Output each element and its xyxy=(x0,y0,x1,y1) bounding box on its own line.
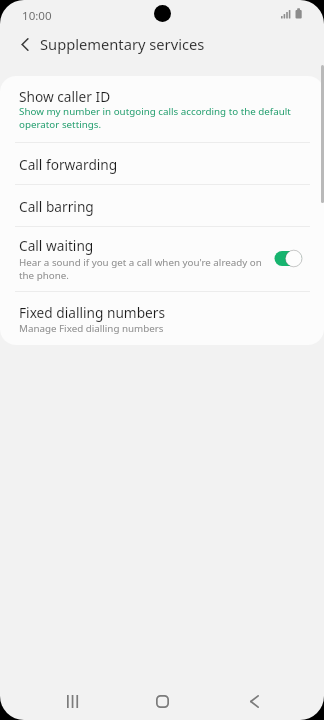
staticText: Supplementary services xyxy=(40,34,205,54)
staticText: Fixed dialling numbers xyxy=(19,303,166,322)
button[interactable]: Call waiting xyxy=(0,227,324,291)
button[interactable]: Call barring xyxy=(0,185,324,226)
button[interactable]: Call waiting toggle xyxy=(274,248,303,269)
button[interactable]: Back xyxy=(10,29,40,59)
staticText: Show my number in outgoing calls accordi… xyxy=(19,105,293,131)
staticText: Show caller ID xyxy=(19,87,111,106)
button[interactable]: Back xyxy=(234,681,275,720)
button[interactable]: Fixed dialling numbers xyxy=(0,292,324,345)
staticText: Call waiting xyxy=(19,236,94,255)
button[interactable]: Recents xyxy=(52,681,93,720)
button[interactable]: Call forwarding xyxy=(0,143,324,184)
button[interactable]: Home xyxy=(142,681,183,720)
staticText: 10:00 xyxy=(22,8,52,24)
staticText: Call barring xyxy=(19,197,94,216)
staticText: Call forwarding xyxy=(19,155,118,174)
staticText: Manage Fixed dialling numbers xyxy=(19,322,164,335)
staticText: Hear a sound if you get a call when you'… xyxy=(19,256,267,282)
button[interactable]: Show caller ID xyxy=(0,76,324,142)
